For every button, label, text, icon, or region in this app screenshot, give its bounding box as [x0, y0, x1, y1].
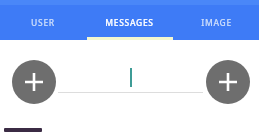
staticText: IMAGE	[201, 17, 232, 29]
button[interactable]: IMAGE	[173, 5, 259, 40]
button[interactable]: USER	[0, 5, 86, 40]
button[interactable]: MESSAGES	[86, 5, 172, 40]
staticText: MESSAGES	[105, 17, 154, 29]
staticText: USER	[31, 17, 55, 29]
button[interactable]: Add	[206, 60, 250, 104]
button[interactable]: Add	[12, 60, 56, 104]
